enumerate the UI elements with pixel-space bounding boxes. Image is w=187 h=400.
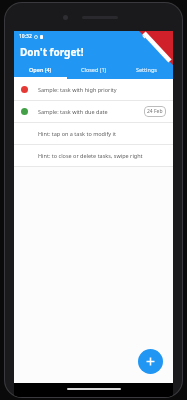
staticText: Open (4) bbox=[29, 66, 52, 73]
staticText: Hint: tap on a task to modify it bbox=[38, 130, 116, 137]
staticText: 24 Feb bbox=[147, 108, 163, 115]
staticText: Sample: task with due date bbox=[38, 108, 144, 115]
button[interactable]: Add task bbox=[138, 349, 163, 374]
staticText: 10:32 bbox=[19, 33, 32, 40]
button[interactable]: Sample: task with high priority bbox=[14, 79, 173, 100]
button[interactable]: Open (4) bbox=[14, 62, 67, 77]
staticText: Closed (1) bbox=[81, 66, 107, 73]
button[interactable]: Settings bbox=[120, 62, 173, 77]
staticText: Settings bbox=[136, 66, 157, 73]
button[interactable]: Closed (1) bbox=[67, 62, 120, 77]
button[interactable]: Sample: task with due date bbox=[14, 101, 173, 122]
staticText: Don't forget! bbox=[20, 45, 84, 59]
staticText: Sample: task with high priority bbox=[38, 86, 166, 93]
staticText: Hint: to close or delete tasks, swipe ri… bbox=[38, 152, 143, 159]
button[interactable]: Hint: to close or delete tasks, swipe ri… bbox=[14, 145, 173, 166]
button[interactable]: Hint: tap on a task to modify it bbox=[14, 123, 173, 144]
